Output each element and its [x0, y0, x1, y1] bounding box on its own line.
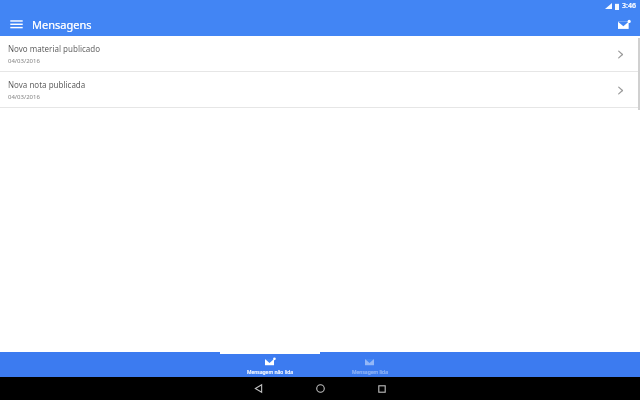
staticText: Mensagem não lida [220, 369, 320, 376]
button[interactable]: Messages [614, 14, 634, 34]
button[interactable]: Novo material publicado [0, 36, 640, 71]
button[interactable]: Mensagem lida [320, 352, 420, 377]
button[interactable]: Open navigation menu [6, 14, 26, 34]
staticText: Novo material publicado [8, 43, 101, 54]
staticText: Mensagens [32, 17, 92, 32]
button[interactable]: Recent apps [362, 377, 402, 400]
button[interactable]: Nova nota publicada [0, 72, 640, 107]
staticText: 3:46 [622, 1, 636, 11]
button[interactable]: Mensagem não lida [220, 352, 320, 377]
button[interactable]: Home [300, 377, 340, 400]
staticText: 04/03/2016 [8, 57, 40, 65]
staticText: Mensagem lida [320, 369, 420, 376]
staticText: Nova nota publicada [8, 79, 86, 90]
staticText: 04/03/2016 [8, 93, 40, 101]
button[interactable]: Back [238, 377, 278, 400]
